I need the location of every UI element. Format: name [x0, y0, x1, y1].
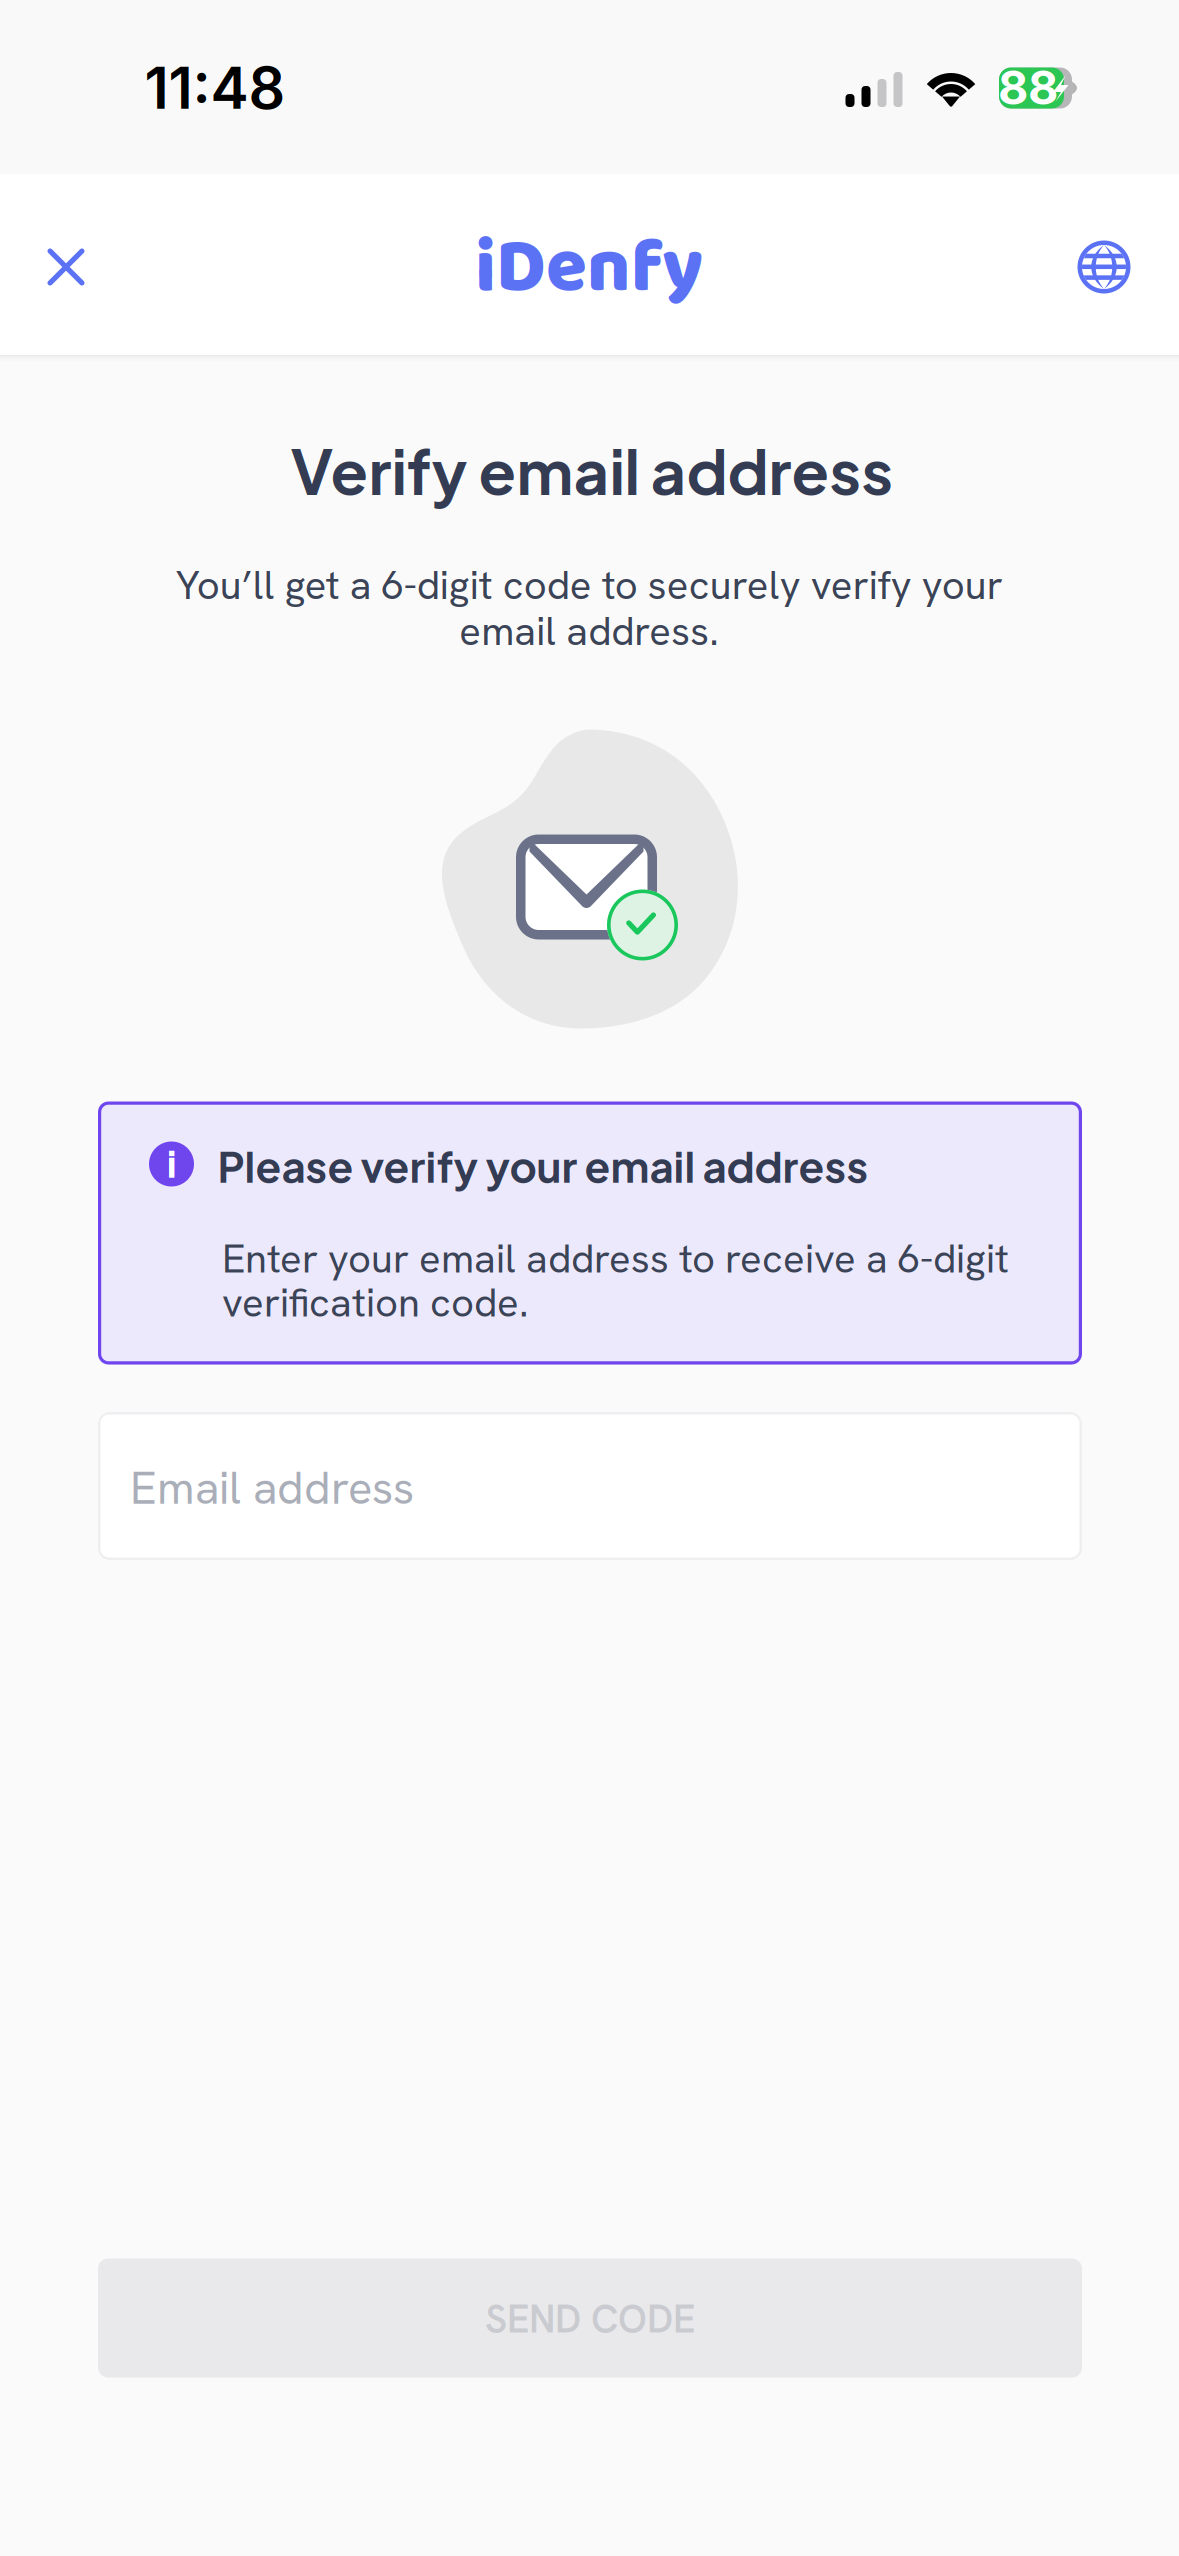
staticText: SEND CODE [485, 2294, 695, 2344]
staticText: You’ll get a 6-digit code to securely ve… [175, 559, 1002, 657]
staticText: Verify email address [290, 431, 893, 509]
staticText: 11:48 [144, 53, 285, 123]
staticText: iDenfy [475, 209, 703, 329]
button[interactable]: Change language [1047, 210, 1160, 323]
staticText: Please verify your email address [217, 1139, 868, 1192]
staticText: i [167, 1140, 176, 1186]
staticText: 88 [998, 59, 1058, 116]
button[interactable]: SEND CODE [98, 2258, 1082, 2377]
staticText: Enter your email address to receive a 6-… [222, 1232, 1009, 1329]
staticText: Email address [130, 1458, 414, 1518]
button[interactable]: Email address [98, 1412, 1082, 1560]
button[interactable]: Close [17, 218, 114, 315]
